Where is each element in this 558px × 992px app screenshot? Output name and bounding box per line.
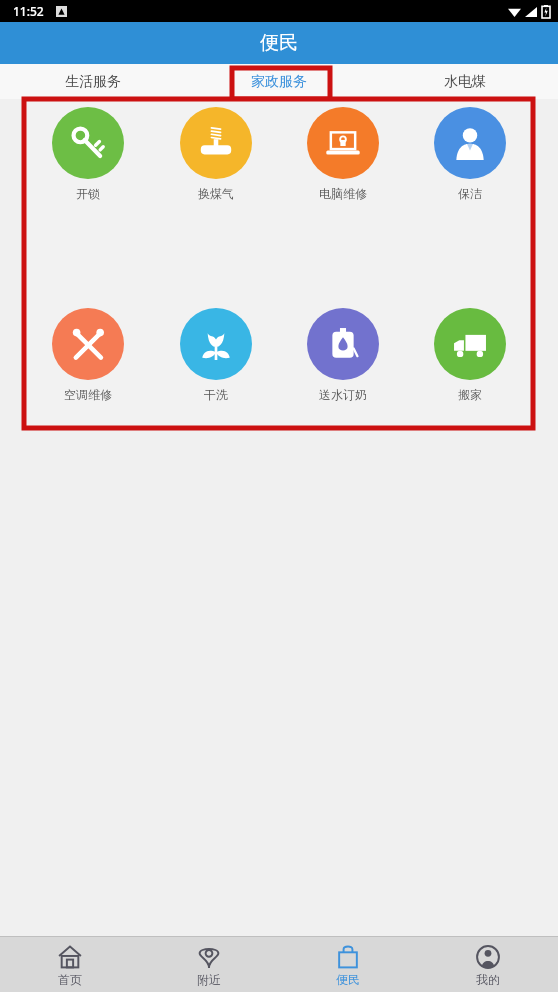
staticText: 电脑维修 <box>319 186 367 201</box>
button[interactable]: 保洁 <box>406 107 533 201</box>
button[interactable]: 送水订奶 <box>279 308 406 402</box>
staticText: 家政服务 <box>251 73 307 91</box>
button[interactable]: 我的 <box>418 937 558 992</box>
staticText: 附近 <box>197 972 221 987</box>
button[interactable]: 家政服务 <box>186 64 372 99</box>
staticText: 搬家 <box>458 387 482 402</box>
button[interactable]: 水电煤 <box>372 64 558 99</box>
staticText: 送水订奶 <box>319 387 367 402</box>
button[interactable]: 生活服务 <box>0 64 186 99</box>
staticText: 11:52 <box>13 3 44 19</box>
staticText: 便民 <box>336 972 360 987</box>
button[interactable]: 搬家 <box>406 308 533 402</box>
button[interactable]: 便民 <box>278 937 418 992</box>
button[interactable]: 空调维修 <box>24 308 152 402</box>
staticText: 干洗 <box>204 387 228 402</box>
button[interactable]: 干洗 <box>152 308 279 402</box>
button[interactable]: 开锁 <box>24 107 152 201</box>
staticText: 首页 <box>58 972 82 987</box>
staticText: 保洁 <box>458 186 482 201</box>
button[interactable]: 电脑维修 <box>279 107 406 201</box>
staticText: 我的 <box>476 972 500 987</box>
staticText: 生活服务 <box>65 73 121 91</box>
button[interactable]: 首页 <box>0 937 139 992</box>
staticText: 开锁 <box>76 186 100 201</box>
staticText: 换煤气 <box>198 186 234 201</box>
button[interactable]: 附近 <box>139 937 278 992</box>
staticText: 空调维修 <box>64 387 112 402</box>
button[interactable]: 换煤气 <box>152 107 279 201</box>
staticText: 便民 <box>260 31 298 55</box>
staticText: 水电煤 <box>444 73 486 91</box>
